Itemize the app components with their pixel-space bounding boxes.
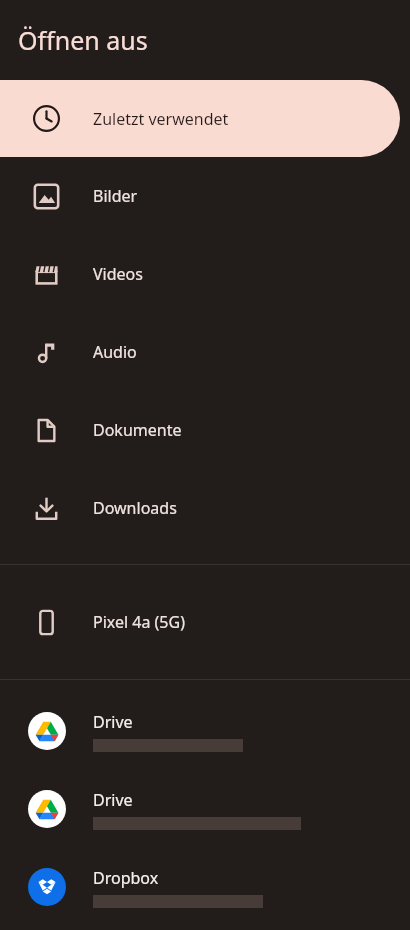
staticText: Bilder (93, 185, 138, 207)
button[interactable]: Drive (0, 692, 410, 770)
staticText: Dropbox (93, 867, 159, 889)
staticText: Dokumente (93, 419, 182, 441)
staticText: Pixel 4a (5G) (93, 611, 185, 633)
button[interactable]: Dokumente (0, 391, 410, 469)
button[interactable]: Pixel 4a (5G) (0, 565, 410, 679)
button[interactable]: Audio (0, 313, 410, 391)
staticText: Videos (93, 263, 143, 285)
staticText: Zuletzt verwendet (93, 108, 229, 130)
button[interactable]: Drive (0, 770, 410, 848)
button[interactable]: Videos (0, 235, 410, 313)
button[interactable]: Bilder (0, 157, 410, 235)
staticText: Öffnen aus (18, 23, 148, 57)
staticText: Drive (93, 789, 133, 811)
button[interactable]: Dropbox (0, 848, 410, 926)
button[interactable]: Downloads (0, 469, 410, 547)
staticText: Drive (93, 711, 133, 733)
staticText: Audio (93, 341, 137, 363)
staticText: Downloads (93, 497, 177, 519)
button[interactable]: Zuletzt verwendet (0, 80, 400, 157)
